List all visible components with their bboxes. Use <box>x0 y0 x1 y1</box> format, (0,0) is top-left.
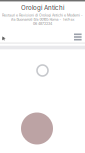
staticText: Orologi Antichi <box>21 4 64 11</box>
button[interactable]: Home <box>0 32 9 41</box>
staticText: Via Buonarroti 8/a 00185 Roma - Tel/Fax <box>10 17 74 22</box>
staticText: Restauri e Revisioni di Orologi Antichi … <box>2 13 83 17</box>
staticText: 06 4872234 <box>33 22 52 26</box>
button[interactable]: Menu <box>71 33 85 41</box>
